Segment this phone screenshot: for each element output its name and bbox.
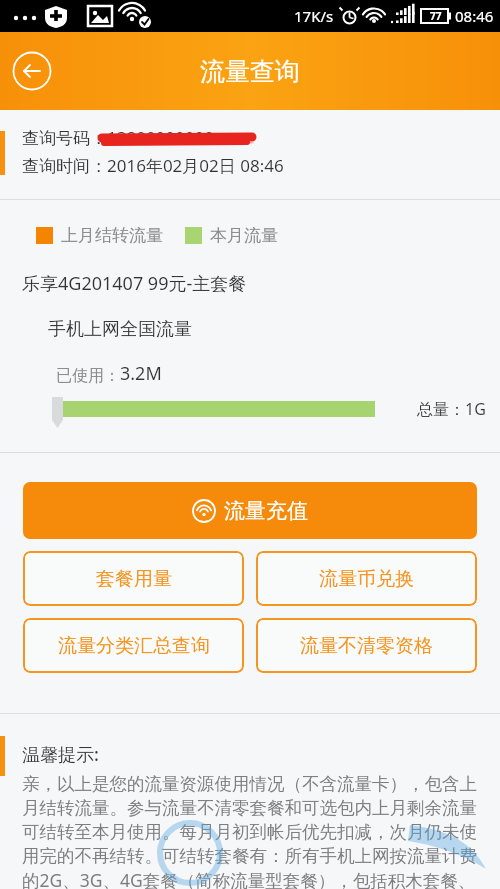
staticText: 手机上网全国流量: [48, 318, 192, 341]
staticText: 流量不清零资格: [300, 634, 433, 658]
staticText: 3.2M: [120, 361, 162, 386]
staticText: 77: [430, 9, 442, 23]
staticText: 上月结转流量: [61, 225, 163, 246]
staticText: 亲，以上是您的流量资源使用情况（不含流量卡），包含上月结转流量。参与流量不清零套…: [22, 773, 490, 889]
staticText: 流量充值: [224, 498, 308, 524]
staticText: 总量：1G: [417, 398, 486, 420]
staticText: 流量查询: [200, 56, 300, 87]
staticText: 已使用：: [56, 366, 120, 386]
button[interactable]: 流量充值: [23, 482, 477, 539]
staticText: 查询号码：13800000000: [22, 126, 214, 149]
button[interactable]: 套餐用量: [23, 551, 244, 606]
staticText: 乐享4G201407 99元-主套餐: [22, 271, 247, 296]
staticText: 套餐用量: [96, 567, 172, 591]
staticText: 查询时间：2016年02月02日 08:46: [22, 154, 284, 177]
button[interactable]: 流量不清零资格: [256, 618, 477, 673]
button[interactable]: 流量分类汇总查询: [23, 618, 244, 673]
staticText: 08:46: [455, 6, 494, 26]
button[interactable]: 流量币兑换: [256, 551, 477, 606]
staticText: 温馨提示:: [22, 742, 99, 767]
staticText: 流量币兑换: [319, 567, 414, 591]
staticText: 本月流量: [210, 225, 278, 246]
staticText: 流量分类汇总查询: [58, 634, 210, 658]
staticText: 17K/s: [294, 6, 334, 26]
button[interactable]: Back: [10, 49, 54, 93]
